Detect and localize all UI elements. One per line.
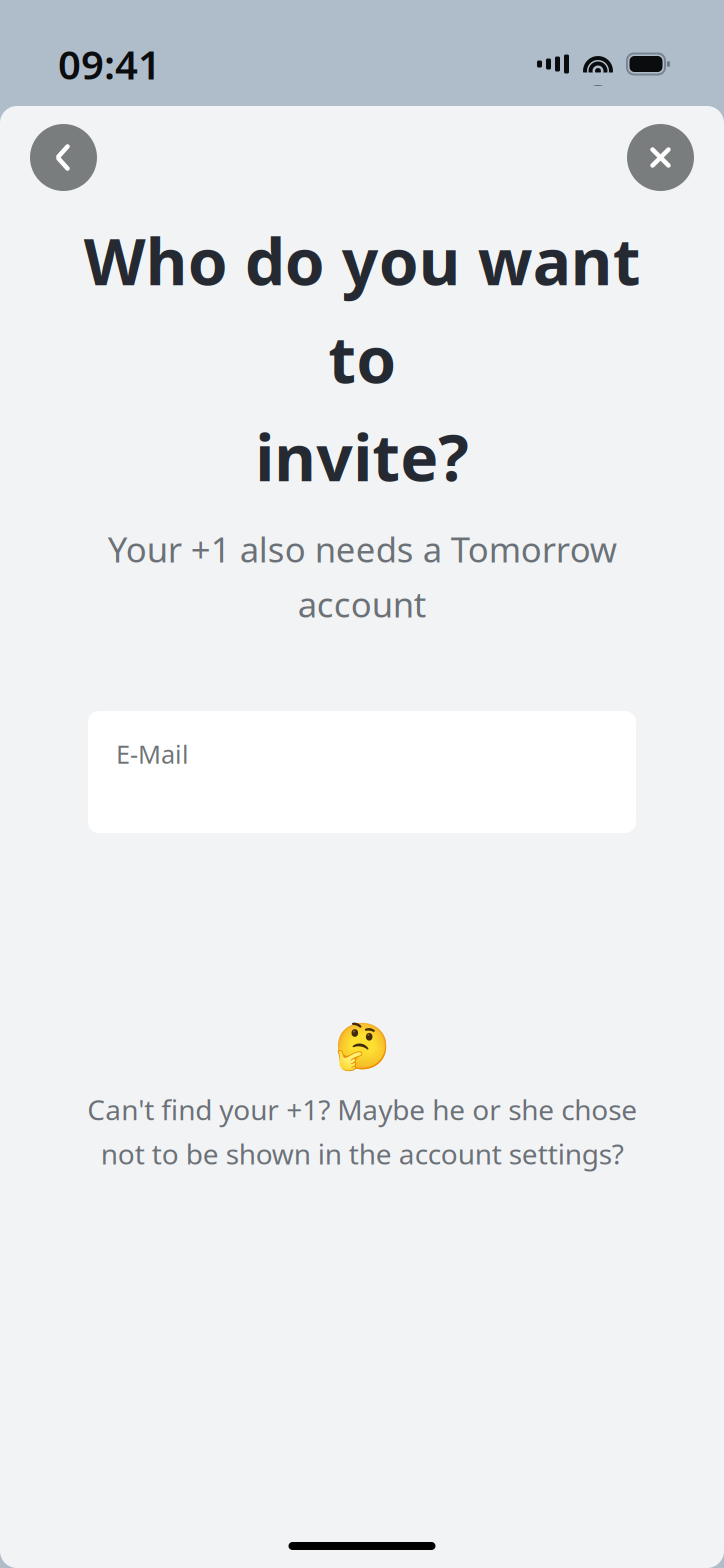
staticText: E-Mail — [116, 737, 189, 771]
staticText: 🤔 — [334, 1021, 390, 1073]
staticText: Your +1 also needs a Tomorrow account — [107, 526, 616, 627]
button[interactable]: E-Mail — [88, 711, 636, 833]
staticText: 09:41 — [58, 37, 161, 90]
staticText: Can't find your +1? Maybe he or she chos… — [87, 1091, 637, 1172]
staticText: Who do you want to invite? — [83, 218, 640, 499]
button[interactable]: Back — [30, 124, 97, 191]
button[interactable]: Close — [627, 124, 694, 191]
